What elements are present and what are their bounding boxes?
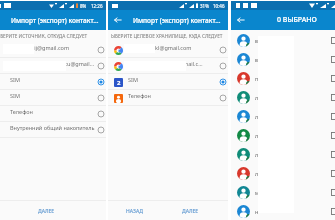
staticText: ДАЛЕЕ bbox=[38, 208, 55, 215]
button[interactable]: л bbox=[231, 126, 335, 145]
button[interactable]: п bbox=[231, 69, 335, 88]
staticText: л bbox=[255, 151, 259, 158]
button[interactable]: Внутренний общий накопитель bbox=[0, 122, 106, 138]
button[interactable]: НАЗАД bbox=[126, 208, 143, 215]
button[interactable]: SIM bbox=[0, 74, 106, 90]
staticText: 0 ВЫБРАНО bbox=[277, 15, 317, 25]
staticText: 10:46 bbox=[213, 3, 225, 9]
staticText: Внутренний общий накопитель bbox=[10, 124, 95, 131]
staticText: НАЗАД bbox=[126, 208, 143, 215]
button[interactable]: Back bbox=[236, 15, 246, 25]
button[interactable]: л bbox=[231, 164, 335, 183]
button[interactable]: abcdefghijkl@gmail.com bbox=[108, 42, 228, 58]
staticText: 31% bbox=[200, 3, 209, 9]
button[interactable]: Back bbox=[113, 15, 123, 25]
button[interactable]: л bbox=[231, 88, 335, 107]
staticText: л bbox=[255, 170, 259, 177]
staticText: SIM bbox=[10, 76, 20, 83]
staticText: н bbox=[255, 208, 259, 215]
staticText: Телефон bbox=[10, 108, 33, 115]
button[interactable]: в bbox=[231, 31, 335, 50]
button[interactable]: abcdefghijklmnop@gmail.c… bbox=[108, 58, 228, 74]
button[interactable]: abcdefghij@gmail.com bbox=[0, 42, 106, 58]
staticText: п bbox=[255, 75, 259, 82]
button[interactable]: л bbox=[231, 145, 335, 164]
staticText: 12:26 bbox=[91, 3, 103, 9]
staticText: Импорт (экспорт) контакт… bbox=[11, 16, 99, 25]
staticText: ЫБЕРИТЕ ЦЕЛЕВОЕ ХРАНИЛИЩЕ, КУДА СЛЕДУЕТ … bbox=[111, 33, 231, 39]
staticText: л bbox=[255, 132, 259, 139]
staticText: abcdefghijkl@gmail.com bbox=[128, 44, 192, 51]
button[interactable]: л bbox=[231, 107, 335, 126]
staticText: abcdefghij@gmail.com bbox=[10, 44, 70, 51]
staticText: abcdefghijklmnopqrstu@gmail.c… bbox=[10, 60, 95, 67]
button[interactable]: 2 bbox=[108, 74, 228, 90]
button[interactable]: Телефон bbox=[0, 106, 106, 122]
staticText: Импорт (экспорт) контакт… bbox=[133, 16, 221, 25]
button[interactable]: SIM bbox=[0, 90, 106, 106]
staticText: л bbox=[255, 113, 259, 120]
staticText: Телефон bbox=[128, 92, 151, 99]
staticText: л bbox=[255, 94, 259, 101]
staticText: в bbox=[255, 37, 258, 44]
staticText: 8% bbox=[80, 3, 87, 9]
button[interactable]: Телефон bbox=[108, 90, 228, 106]
staticText: abcdefghijklmnop@gmail.c… bbox=[128, 60, 203, 67]
staticText: 2 bbox=[117, 79, 121, 87]
button[interactable]: м bbox=[231, 183, 335, 202]
staticText: SIM bbox=[10, 92, 20, 99]
button[interactable]: н bbox=[231, 202, 335, 220]
staticText: м bbox=[255, 189, 259, 196]
button[interactable]: ДАЛЕЕ bbox=[0, 201, 106, 220]
staticText: SIM bbox=[128, 76, 138, 83]
button[interactable]: в bbox=[231, 50, 335, 69]
button[interactable]: abcdefghijklmnopqrstu@gmail.c… bbox=[0, 58, 106, 74]
staticText: ДАЛЕЕ bbox=[182, 208, 199, 215]
button[interactable]: ДАЛЕЕ bbox=[182, 208, 199, 215]
staticText: в bbox=[255, 56, 258, 63]
staticText: ВЫБЕРИТЕ ИСТОЧНИК, ОТКУДА СЛЕДУЕТ КОПИРО… bbox=[0, 33, 113, 39]
